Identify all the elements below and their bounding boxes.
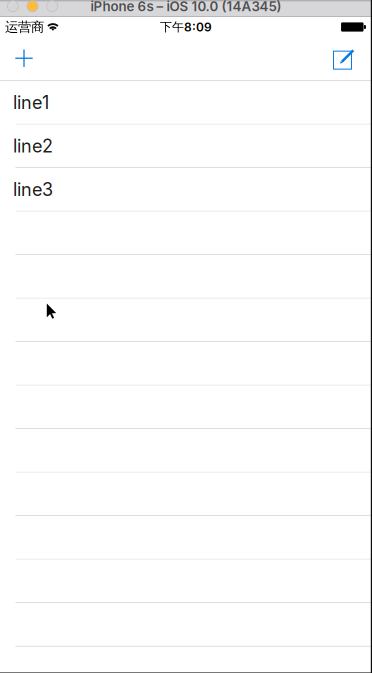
staticText: iPhone 6s – iOS 10.0 (14A345) xyxy=(90,0,281,15)
button[interactable] xyxy=(0,472,372,516)
staticText: line2 xyxy=(13,135,53,157)
staticText: line1 xyxy=(13,92,49,113)
staticText: line3 xyxy=(13,179,53,200)
button[interactable]: Add xyxy=(2,37,46,81)
button[interactable] xyxy=(0,559,372,603)
staticText: 下午8:09 xyxy=(160,19,212,34)
button[interactable] xyxy=(0,385,372,429)
button[interactable]: line1 xyxy=(0,81,372,124)
button[interactable] xyxy=(0,603,372,646)
button[interactable] xyxy=(0,255,372,298)
button[interactable] xyxy=(0,211,372,255)
button[interactable]: line3 xyxy=(0,168,372,211)
button[interactable]: Compose xyxy=(322,37,366,81)
button[interactable]: line2 xyxy=(0,124,372,168)
staticText: 运营商 xyxy=(5,19,44,35)
button[interactable] xyxy=(0,342,372,385)
button[interactable] xyxy=(0,298,372,342)
button[interactable] xyxy=(0,429,372,472)
button[interactable] xyxy=(0,516,372,559)
